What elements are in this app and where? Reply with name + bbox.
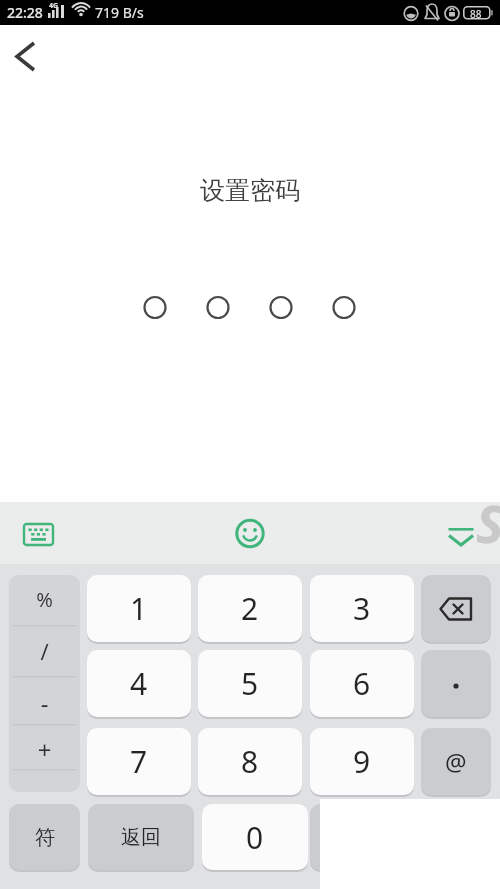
button[interactable]: 5 bbox=[198, 650, 302, 717]
button[interactable] bbox=[228, 511, 272, 555]
staticText: 返回 bbox=[121, 825, 161, 850]
staticText: 6 bbox=[353, 663, 371, 704]
staticText: 7 bbox=[130, 741, 148, 782]
button[interactable]: @ bbox=[421, 728, 491, 795]
staticText: 4G bbox=[49, 1, 59, 11]
staticText: 88 bbox=[470, 7, 482, 21]
button[interactable] bbox=[16, 516, 62, 556]
button[interactable]: 6 bbox=[310, 650, 414, 717]
staticText: 719 B/s bbox=[95, 3, 144, 22]
staticText: 2 bbox=[241, 588, 259, 629]
staticText: + bbox=[9, 733, 80, 766]
staticText: 设置密码 bbox=[0, 175, 500, 206]
button[interactable] bbox=[421, 575, 491, 642]
button[interactable] bbox=[310, 804, 491, 870]
staticText: 9 bbox=[353, 741, 371, 782]
button[interactable]: 7 bbox=[87, 728, 191, 795]
staticText: 4 bbox=[130, 663, 148, 704]
button[interactable] bbox=[6, 33, 46, 77]
staticText: 22:28 bbox=[7, 3, 43, 22]
staticText: 符 bbox=[35, 825, 55, 850]
button[interactable]: 9 bbox=[310, 728, 414, 795]
button[interactable]: 3 bbox=[310, 575, 414, 642]
staticText: - bbox=[9, 686, 80, 719]
staticText: 8 bbox=[241, 741, 259, 782]
button[interactable]: 0 bbox=[202, 804, 308, 870]
button[interactable]: 2 bbox=[198, 575, 302, 642]
button[interactable]: 返回 bbox=[88, 804, 194, 870]
button[interactable]: 符 bbox=[9, 804, 80, 870]
button[interactable]: 8 bbox=[198, 728, 302, 795]
staticText: @ bbox=[445, 745, 467, 778]
staticText: 5 bbox=[241, 663, 259, 704]
staticText: 3 bbox=[353, 588, 371, 629]
staticText: 0 bbox=[246, 817, 264, 858]
button[interactable] bbox=[9, 575, 80, 792]
staticText: / bbox=[9, 636, 80, 666]
staticText: S bbox=[476, 487, 500, 549]
button[interactable] bbox=[421, 650, 491, 717]
button[interactable]: 1 bbox=[87, 575, 191, 642]
button[interactable] bbox=[440, 516, 482, 556]
staticText: 1 bbox=[130, 588, 148, 629]
button[interactable]: 4 bbox=[87, 650, 191, 717]
staticText: % bbox=[9, 586, 80, 613]
